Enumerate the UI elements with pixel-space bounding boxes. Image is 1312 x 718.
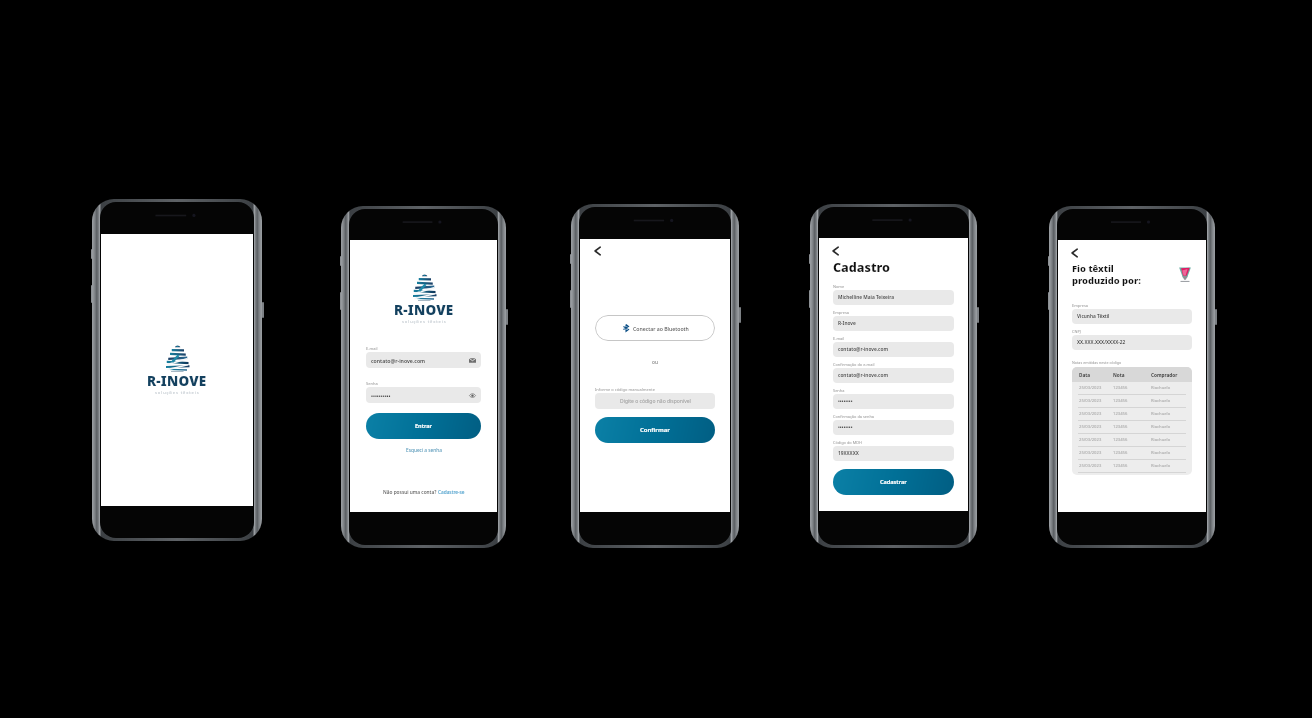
- staticText: Riachuelo: [1151, 385, 1189, 391]
- staticText: 25/03/2023: [1079, 437, 1113, 443]
- button[interactable]: Digite o código não disponível: [595, 393, 715, 409]
- staticText: Confirmação do e-mail: [833, 362, 875, 367]
- button[interactable]: Conectar ao Bluetooth: [595, 315, 715, 341]
- staticText: 25/03/2023: [1079, 450, 1113, 456]
- staticText: 123456: [1113, 424, 1151, 430]
- staticText: E-mail: [366, 346, 378, 351]
- staticText: Digite o código não disponível: [620, 398, 691, 405]
- staticText: Riachuelo: [1151, 450, 1189, 456]
- staticText: R-INOVE: [394, 301, 454, 319]
- staticText: Fio têxtil produzido por:: [1072, 262, 1178, 287]
- staticText: 25/03/2023: [1079, 424, 1113, 430]
- staticText: soluções têxteis: [155, 390, 200, 396]
- button[interactable]: 25/03/2023: [1072, 408, 1192, 420]
- staticText: Comprador: [1151, 372, 1189, 378]
- staticText: R-Inove: [838, 320, 949, 327]
- button[interactable]: Back: [1070, 247, 1084, 259]
- staticText: Riachuelo: [1151, 463, 1189, 469]
- button[interactable]: ••••••••••: [366, 387, 481, 403]
- staticText: 25/03/2023: [1079, 411, 1113, 417]
- button[interactable]: 25/03/2023: [1072, 460, 1192, 472]
- staticText: Senha: [366, 381, 378, 386]
- staticText: Notas emitidas neste código: [1072, 360, 1122, 365]
- button[interactable]: Cadastre-se: [438, 489, 465, 496]
- staticText: 123456: [1113, 411, 1151, 417]
- button[interactable]: R-Inove: [833, 316, 954, 331]
- staticText: 123456: [1113, 437, 1151, 443]
- staticText: Riachuelo: [1151, 437, 1189, 443]
- staticText: Vicunha Têxtil: [1077, 313, 1187, 320]
- staticText: Senha: [833, 388, 845, 393]
- button[interactable]: contato@r-inove.com: [833, 368, 954, 383]
- staticText: 25/03/2023: [1079, 398, 1113, 404]
- button[interactable]: ••••••••: [833, 394, 954, 409]
- staticText: Confirmar: [640, 426, 670, 434]
- button[interactable]: 25/03/2023: [1072, 447, 1192, 459]
- button[interactable]: 25/03/2023: [1072, 395, 1192, 407]
- staticText: ••••••••: [838, 424, 949, 431]
- staticText: ••••••••••: [371, 392, 469, 399]
- button[interactable]: Confirmar: [595, 417, 715, 443]
- staticText: 123456: [1113, 450, 1151, 456]
- staticText: Código do MDH: [833, 440, 862, 445]
- staticText: 123456: [1113, 385, 1151, 391]
- staticText: Riachuelo: [1151, 424, 1189, 430]
- button[interactable]: contato@r-inove.com: [833, 342, 954, 357]
- staticText: Nome: [833, 284, 845, 289]
- staticText: Cadastrar: [880, 478, 907, 486]
- staticText: Não possui uma conta?: [383, 489, 438, 496]
- staticText: Empresa: [1072, 303, 1088, 308]
- staticText: ••••••••: [838, 398, 949, 405]
- button[interactable]: Esqueci a senha: [406, 447, 442, 454]
- staticText: 123456: [1113, 463, 1151, 469]
- button[interactable]: Michelline Maia Teixeira: [833, 290, 954, 305]
- staticText: contato@r-inove.com: [838, 372, 949, 379]
- staticText: 25/03/2023: [1079, 385, 1113, 391]
- staticText: R-INOVE: [147, 372, 207, 390]
- button[interactable]: XX.XXX.XXX/XXXX-22: [1072, 335, 1192, 350]
- staticText: Empresa: [833, 310, 849, 315]
- staticText: CNPJ: [1072, 329, 1081, 334]
- staticText: E-mail: [833, 336, 845, 341]
- staticText: Informe o código manualmente: [595, 387, 655, 392]
- button[interactable]: Cadastrar: [833, 469, 954, 495]
- staticText: Nota: [1113, 372, 1151, 378]
- staticText: contato@r-inove.com: [371, 357, 469, 364]
- staticText: ou: [652, 359, 658, 366]
- staticText: Cadastro: [833, 259, 890, 276]
- button[interactable]: Vicunha Têxtil: [1072, 309, 1192, 324]
- staticText: XX.XXX.XXX/XXXX-22: [1077, 339, 1187, 346]
- staticText: 25/03/2023: [1079, 463, 1113, 469]
- staticText: contato@r-inove.com: [838, 346, 949, 353]
- button[interactable]: 19XXXXX: [833, 446, 954, 461]
- staticText: Conectar ao Bluetooth: [633, 325, 689, 332]
- staticText: Data: [1079, 372, 1113, 378]
- button[interactable]: 25/03/2023: [1072, 421, 1192, 433]
- staticText: Michelline Maia Teixeira: [838, 294, 949, 301]
- button[interactable]: 25/03/2023: [1072, 382, 1192, 394]
- staticText: soluções têxteis: [402, 319, 447, 325]
- button[interactable]: Back: [831, 245, 845, 257]
- staticText: Riachuelo: [1151, 411, 1189, 417]
- staticText: Confirmação da senha: [833, 414, 875, 419]
- staticText: Entrar: [415, 422, 432, 430]
- button[interactable]: 25/03/2023: [1072, 434, 1192, 446]
- button[interactable]: Back: [593, 245, 607, 257]
- staticText: 123456: [1113, 398, 1151, 404]
- button[interactable]: Entrar: [366, 413, 481, 439]
- staticText: 19XXXXX: [838, 450, 949, 457]
- button[interactable]: contato@r-inove.com: [366, 352, 481, 368]
- button[interactable]: ••••••••: [833, 420, 954, 435]
- staticText: Riachuelo: [1151, 398, 1189, 404]
